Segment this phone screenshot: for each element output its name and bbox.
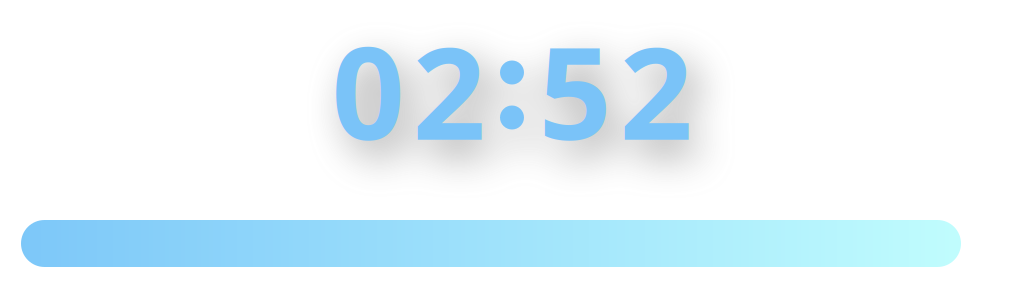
staticText: 02: [331, 5, 485, 175]
staticText: 52: [538, 5, 692, 175]
button[interactable]: Timer progress: [21, 220, 961, 267]
